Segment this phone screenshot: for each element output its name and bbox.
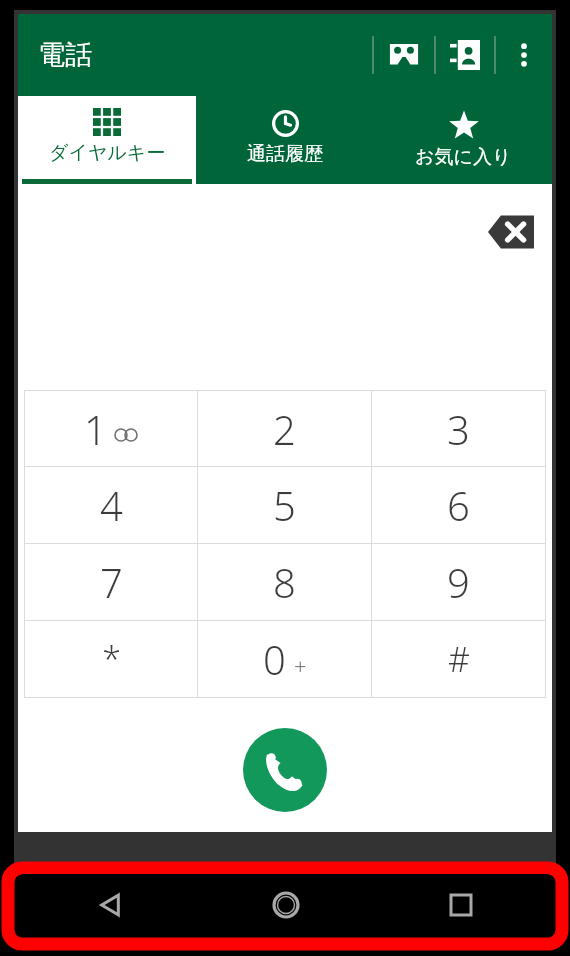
staticText: 0 [263,632,286,686]
staticText: 2 [273,402,296,456]
staticText: 3 [447,402,470,456]
button[interactable]: Back [22,874,198,936]
button[interactable]: 通話履歴 [196,96,374,184]
button[interactable]: 9 [372,544,545,620]
button[interactable]: 5 [198,467,371,543]
staticText: + [294,651,307,681]
button[interactable]: 2 [198,391,371,466]
staticText: # [448,636,470,682]
button[interactable]: # [372,621,545,697]
staticText: 1 [84,402,107,456]
button[interactable]: 3 [372,391,545,466]
button[interactable]: Voicemail [374,25,434,85]
button[interactable]: 8 [198,544,371,620]
button[interactable]: Contacts [436,25,494,85]
button[interactable]: Recent apps [373,874,548,936]
button[interactable]: * [25,621,197,697]
staticText: 6 [447,478,470,532]
button[interactable]: Call [243,728,327,812]
staticText: 5 [273,478,296,532]
staticText: 4 [100,478,123,532]
staticText: ダイヤルキー [49,141,166,165]
button[interactable]: ダイヤルキー [18,96,196,184]
button[interactable]: Backspace [484,210,538,254]
staticText: * [102,636,121,682]
staticText: 電話 [38,38,92,72]
staticText: お気に入り [415,145,512,169]
button[interactable]: More options [496,25,552,85]
button[interactable]: Home [198,874,373,936]
staticText: 8 [273,555,296,609]
button[interactable]: 0 [198,621,371,697]
button[interactable]: 4 [25,467,197,543]
staticText: 通話履歴 [247,142,323,166]
staticText: 7 [100,555,123,609]
staticText: 9 [447,555,470,609]
button[interactable]: お気に入り [374,96,552,184]
button[interactable]: 6 [372,467,545,543]
button[interactable]: 1 [25,391,197,466]
button[interactable]: 7 [25,544,197,620]
